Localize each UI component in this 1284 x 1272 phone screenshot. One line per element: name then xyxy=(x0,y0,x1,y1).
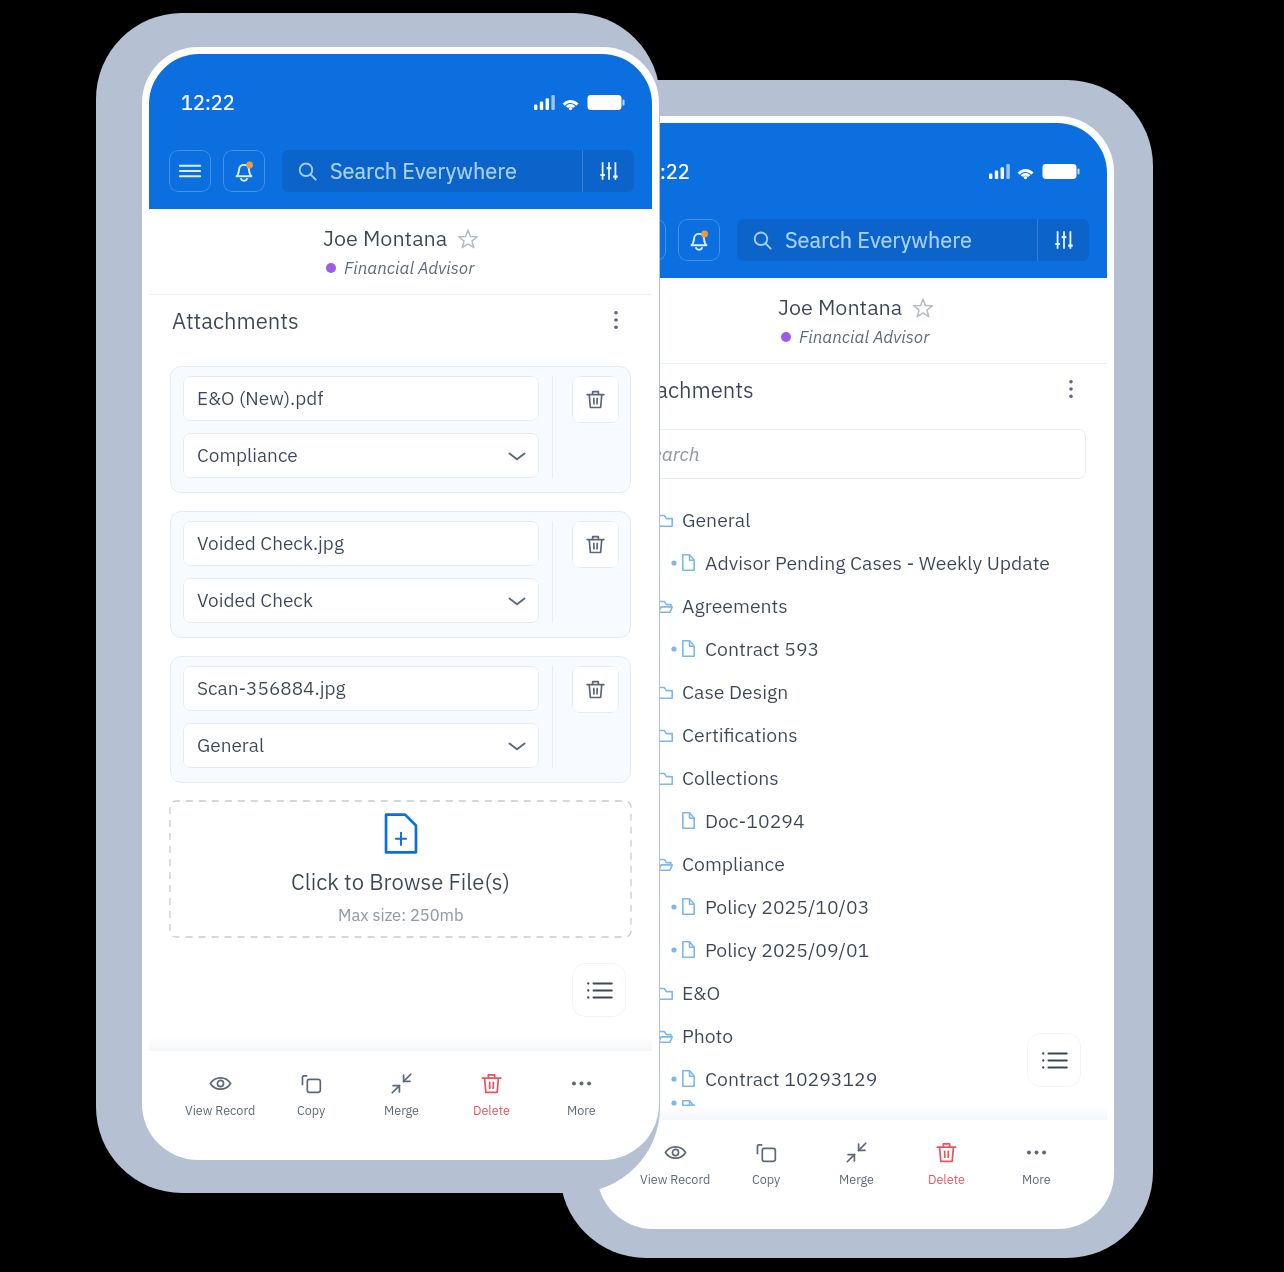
button[interactable]: Scan-356884.jpg xyxy=(170,656,631,783)
button[interactable]: Compliance xyxy=(658,842,1085,885)
button[interactable]: Collections xyxy=(658,756,1085,799)
button[interactable]: Delete xyxy=(446,1051,536,1153)
staticText: Delete xyxy=(928,1171,965,1187)
staticText: 12:22 xyxy=(181,89,235,115)
staticText: Copy xyxy=(297,1102,326,1118)
staticText: View Record xyxy=(185,1102,256,1118)
button[interactable]: Voided Check xyxy=(183,578,539,623)
staticText: Attachments xyxy=(172,306,299,335)
staticText: Merge xyxy=(384,1102,419,1118)
staticText: Financial Advisor xyxy=(799,326,930,348)
button[interactable]: Policy 2025/10/03 xyxy=(671,885,1085,928)
button[interactable]: Doc-10294 xyxy=(671,799,1085,842)
staticText: E&O xyxy=(682,980,721,1005)
staticText: General xyxy=(197,733,265,758)
button[interactable]: Notifications xyxy=(678,219,720,261)
staticText: Photo xyxy=(682,1023,734,1048)
staticText: Compliance xyxy=(682,851,785,876)
staticText: Collections xyxy=(682,765,779,790)
staticText: Joe Montana xyxy=(323,224,448,252)
button[interactable]: Menu xyxy=(624,219,666,261)
staticText: Delete xyxy=(473,1102,510,1118)
button[interactable]: Favorite xyxy=(912,297,933,318)
staticText: Financial Advisor xyxy=(344,257,475,279)
button[interactable]: Search Everywhere xyxy=(737,219,1089,261)
staticText: Scan-356884.jpg xyxy=(197,676,346,701)
button[interactable]: Filter xyxy=(583,150,634,192)
staticText: Copy xyxy=(752,1171,781,1187)
button[interactable]: Compliance xyxy=(183,433,539,478)
staticText: Voided Check.jpg xyxy=(197,531,344,556)
staticText: Search xyxy=(641,442,700,467)
staticText: Click to Browse File(s) xyxy=(291,867,510,896)
staticText: Search Everywhere xyxy=(785,226,972,254)
staticText: Compliance xyxy=(197,443,298,468)
staticText: Case Design xyxy=(682,679,789,704)
staticText: Advisor Pending Cases - Weekly Update xyxy=(705,550,1051,575)
button[interactable]: Contract 10293129 xyxy=(671,1057,1085,1100)
staticText: Search Everywhere xyxy=(330,157,517,185)
staticText: Contract 593 xyxy=(705,636,820,661)
button[interactable]: E&O xyxy=(658,971,1085,1014)
button[interactable]: Contract 593 xyxy=(671,627,1085,670)
staticText: E&O (New).pdf xyxy=(197,386,324,411)
button[interactable]: Policy 2025/09/01 xyxy=(671,928,1085,971)
button[interactable]: Delete attachment xyxy=(572,521,619,568)
button[interactable]: Case Design xyxy=(658,670,1085,713)
button[interactable]: Search xyxy=(625,429,1086,479)
button[interactable]: Copy xyxy=(721,1120,811,1222)
button[interactable]: View Record xyxy=(175,1051,266,1153)
button[interactable]: More xyxy=(536,1051,626,1153)
button[interactable]: General xyxy=(658,498,1085,541)
staticText: Voided Check xyxy=(197,588,313,613)
button[interactable]: List view xyxy=(572,963,626,1017)
button[interactable]: Voided Check.jpg xyxy=(170,511,631,638)
button[interactable]: More options xyxy=(600,304,632,336)
button[interactable]: Click to Browse File(s) xyxy=(170,801,631,937)
button[interactable]: Agreements xyxy=(658,584,1085,627)
button[interactable]: Search Everywhere xyxy=(282,150,634,192)
button[interactable]: View Record xyxy=(630,1120,721,1222)
button[interactable]: More options xyxy=(1055,373,1087,405)
staticText: More xyxy=(1022,1171,1051,1187)
button[interactable]: Notifications xyxy=(223,150,265,192)
staticText: Max size: 250mb xyxy=(338,904,464,925)
staticText: Policy 2025/10/03 xyxy=(705,894,870,919)
button[interactable]: Merge xyxy=(356,1051,446,1153)
button[interactable]: Merge xyxy=(811,1120,901,1222)
staticText: Certifications xyxy=(682,722,798,747)
button[interactable]: Photo xyxy=(658,1014,1085,1057)
staticText: Agreements xyxy=(682,593,788,618)
staticText: More xyxy=(567,1102,596,1118)
button[interactable]: Delete xyxy=(901,1120,991,1222)
staticText: General xyxy=(682,507,751,532)
button[interactable]: E&O (New).pdf xyxy=(170,366,631,493)
button[interactable]: Delete attachment xyxy=(572,376,619,423)
button[interactable]: Favorite xyxy=(457,228,478,249)
staticText: Attachments xyxy=(627,375,754,404)
button[interactable]: Application 2401220 xyxy=(671,1100,1085,1106)
button[interactable]: Copy xyxy=(266,1051,356,1153)
button[interactable]: Delete attachment xyxy=(572,666,619,713)
button[interactable]: Filter xyxy=(1038,219,1089,261)
button[interactable]: More xyxy=(991,1120,1081,1222)
staticText: Policy 2025/09/01 xyxy=(705,937,870,962)
button[interactable]: Certifications xyxy=(658,713,1085,756)
button[interactable]: List view xyxy=(1027,1033,1081,1087)
staticText: Doc-10294 xyxy=(705,808,805,833)
button[interactable]: Menu xyxy=(169,150,211,192)
staticText: 12:22 xyxy=(636,158,690,184)
staticText: Joe Montana xyxy=(778,293,903,321)
staticText: Merge xyxy=(839,1171,874,1187)
staticText: Contract 10293129 xyxy=(705,1066,878,1091)
button[interactable]: Advisor Pending Cases - Weekly Update xyxy=(671,541,1085,584)
button[interactable]: General xyxy=(183,723,539,768)
staticText: View Record xyxy=(640,1171,711,1187)
